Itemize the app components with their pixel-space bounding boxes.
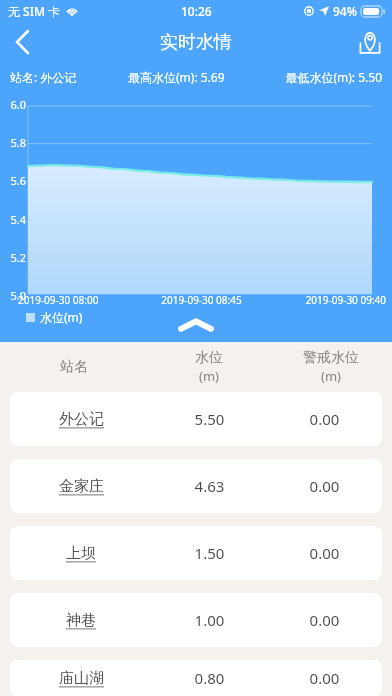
staticText: 水位(m) bbox=[40, 309, 83, 325]
staticText: 4.63 bbox=[152, 476, 267, 496]
staticText: 2019-09-30 08:45 bbox=[140, 293, 263, 307]
staticText: 0.80 bbox=[152, 668, 267, 688]
staticText: 无 SIM 卡 bbox=[8, 3, 61, 19]
staticText: (m) bbox=[321, 367, 341, 385]
staticText: 10:26 bbox=[181, 3, 212, 19]
staticText: 2019-09-30 08:00 bbox=[18, 293, 140, 307]
staticText: 0.00 bbox=[267, 476, 382, 496]
staticText: 站名: 外公记 bbox=[10, 69, 128, 85]
staticText: 5.6 bbox=[0, 173, 26, 188]
staticText: 站名 bbox=[60, 358, 88, 376]
staticText: 实时水情 bbox=[160, 31, 232, 54]
button[interactable]: Collapse chart bbox=[174, 316, 218, 334]
staticText: 神巷 bbox=[66, 611, 96, 630]
staticText: 5.0 bbox=[0, 288, 26, 303]
staticText: 外公记 bbox=[59, 410, 104, 429]
staticText: 金家庄 bbox=[59, 477, 104, 496]
staticText: 1.00 bbox=[152, 610, 267, 630]
staticText: 5.4 bbox=[0, 212, 26, 227]
button[interactable]: 外公记 bbox=[10, 392, 382, 446]
staticText: 0.00 bbox=[267, 610, 382, 630]
staticText: 0.00 bbox=[267, 543, 382, 563]
button[interactable]: 金家庄 bbox=[10, 459, 382, 513]
button[interactable]: 上坝 bbox=[10, 526, 382, 580]
staticText: 2019-09-30 09:40 bbox=[263, 293, 386, 307]
staticText: 94% bbox=[333, 3, 357, 19]
staticText: 最高水位(m): 5.69 bbox=[128, 69, 257, 85]
staticText: 5.2 bbox=[0, 250, 26, 265]
staticText: 上坝 bbox=[66, 544, 96, 563]
staticText: 庙山湖 bbox=[59, 669, 104, 688]
button[interactable]: Map bbox=[348, 22, 392, 62]
staticText: 5.8 bbox=[0, 135, 26, 150]
staticText: 5.50 bbox=[152, 409, 267, 429]
button[interactable]: 庙山湖 bbox=[10, 660, 382, 696]
staticText: 最低水位(m): 5.50 bbox=[257, 69, 382, 85]
staticText: 水位 bbox=[195, 349, 223, 367]
staticText: 1.50 bbox=[152, 543, 267, 563]
staticText: 警戒水位 bbox=[303, 349, 359, 367]
button[interactable]: Back bbox=[0, 22, 44, 62]
staticText: 0.00 bbox=[267, 668, 382, 688]
staticText: (m) bbox=[199, 367, 219, 385]
staticText: 0.00 bbox=[267, 409, 382, 429]
button[interactable]: 神巷 bbox=[10, 593, 382, 647]
staticText: 6.0 bbox=[0, 97, 26, 112]
